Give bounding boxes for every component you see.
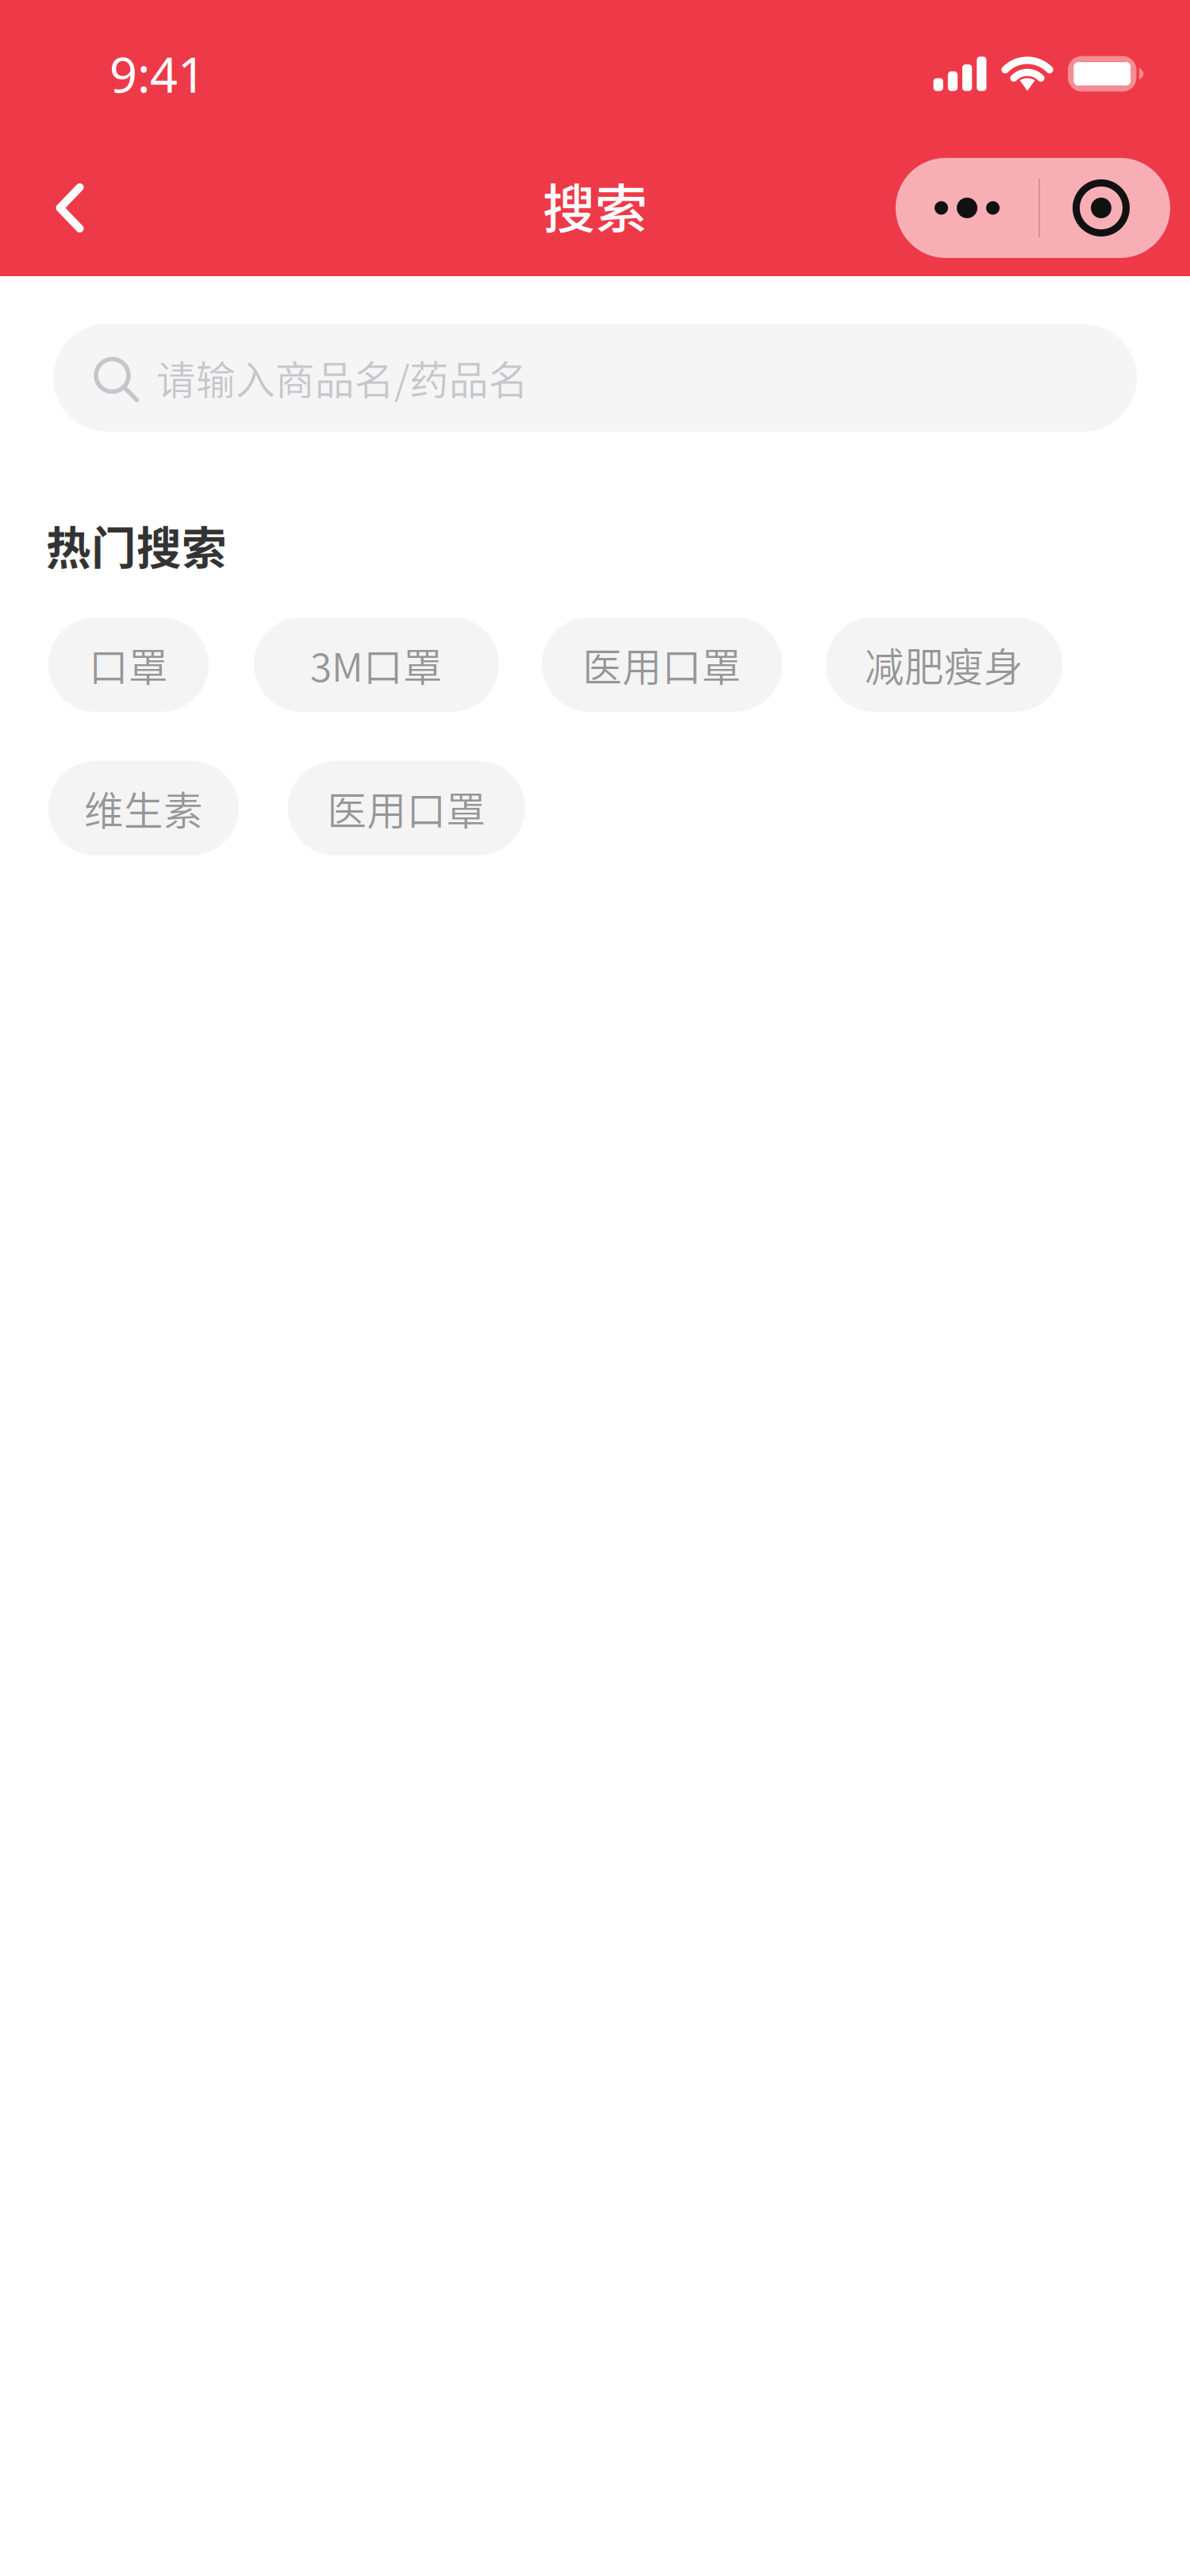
staticText: 医用口罩 [327,780,486,837]
staticText: 口罩 [89,636,168,693]
staticText: 维生素 [84,780,203,837]
staticText: 3M口罩 [310,636,443,693]
staticText: 9:41 [109,42,205,106]
staticText: 热门搜索 [46,513,227,578]
button[interactable]: 医用口罩 [288,761,525,855]
staticText: 减肥瘦身 [865,636,1023,693]
button[interactable]: 减肥瘦身 [826,617,1062,712]
staticText: 搜索 [543,167,647,243]
staticText: 请输入商品名/药品名 [156,349,528,406]
staticText: 医用口罩 [583,636,741,693]
button[interactable]: 请输入商品名/药品名 [53,324,1137,432]
button[interactable]: 维生素 [48,761,239,855]
button[interactable]: 返回 [26,156,113,260]
button[interactable]: 口罩 [48,617,209,712]
button[interactable]: 更多 [896,158,1170,258]
button[interactable]: 医用口罩 [542,617,782,712]
button[interactable]: 3M口罩 [254,617,499,712]
